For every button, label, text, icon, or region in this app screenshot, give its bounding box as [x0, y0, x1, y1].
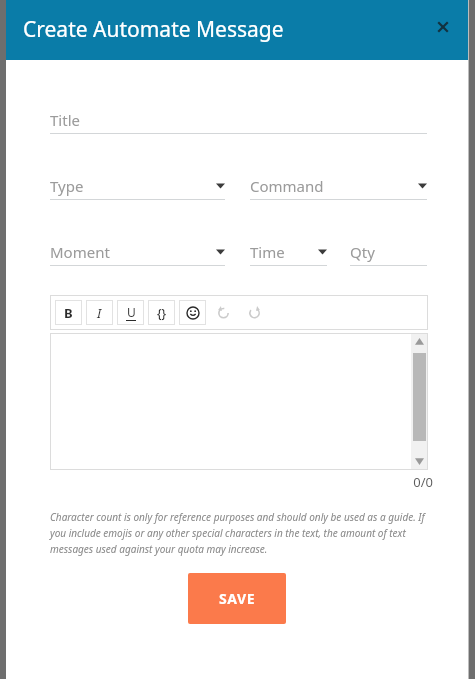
button[interactable]: Qty: [350, 238, 427, 266]
button[interactable]: Moment: [50, 238, 225, 266]
button[interactable]: Command: [250, 172, 427, 200]
staticText: {}: [157, 305, 167, 321]
button[interactable]: Emoji: [179, 300, 206, 325]
button[interactable]: SAVE: [188, 573, 286, 624]
button[interactable]: [50, 333, 428, 470]
staticText: SAVE: [219, 589, 256, 608]
staticText: Type: [50, 176, 84, 196]
staticText: Character count is only for reference pu…: [50, 510, 430, 555]
button[interactable]: Insert variable: [148, 300, 175, 325]
staticText: Title: [50, 110, 80, 130]
button[interactable]: Close: [426, 10, 460, 44]
button[interactable]: Undo: [210, 300, 237, 325]
staticText: Time: [250, 242, 285, 262]
button[interactable]: Bold: [55, 300, 82, 325]
staticText: B: [64, 304, 73, 322]
button[interactable]: Type: [50, 172, 225, 200]
button[interactable]: Time: [250, 238, 327, 266]
staticText: Qty: [350, 242, 375, 262]
staticText: Create Automate Message: [23, 15, 284, 44]
button[interactable]: Redo: [241, 300, 268, 325]
staticText: Command: [250, 176, 324, 196]
button[interactable]: Title: [50, 106, 427, 134]
staticText: 0/0: [50, 473, 433, 491]
button[interactable]: Underline: [117, 300, 144, 325]
staticText: I: [97, 304, 102, 322]
staticText: Moment: [50, 242, 110, 262]
staticText: U: [127, 304, 136, 320]
button[interactable]: Italic: [86, 300, 113, 325]
